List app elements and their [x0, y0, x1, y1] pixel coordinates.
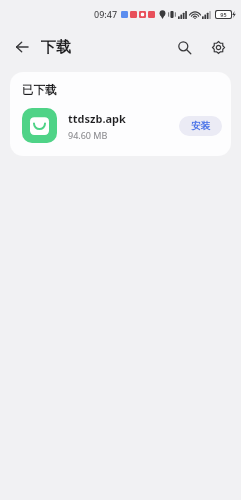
button[interactable]: Back [9, 34, 35, 60]
staticText: 下载 [41, 38, 71, 57]
button[interactable]: 安装 [179, 116, 222, 136]
staticText: 95 [220, 11, 227, 18]
staticText: 安装 [191, 120, 210, 132]
button[interactable]: Search [171, 34, 197, 60]
staticText: ttdszb.apk [68, 111, 126, 126]
staticText: 94.60 MB [68, 129, 108, 141]
staticText: 09:47 [94, 8, 118, 20]
staticText: 已下载 [22, 83, 57, 97]
button[interactable]: Settings [205, 34, 231, 60]
